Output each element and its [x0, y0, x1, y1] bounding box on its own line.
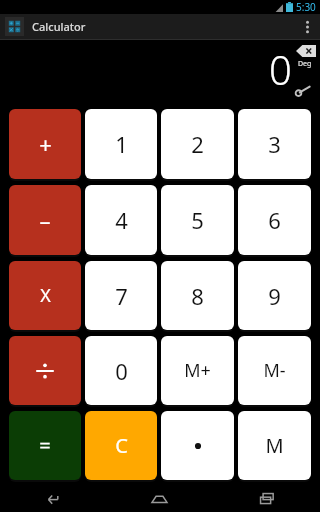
button[interactable]: 5: [161, 185, 234, 255]
staticText: –: [39, 205, 51, 235]
button[interactable]: Divide: [9, 336, 81, 405]
button[interactable]: 1: [85, 109, 157, 179]
button[interactable]: =: [9, 411, 81, 480]
staticText: M+: [184, 358, 211, 383]
staticText: 6: [268, 205, 281, 235]
button[interactable]: Back: [0, 485, 106, 512]
button[interactable]: +: [9, 109, 81, 179]
button[interactable]: 4: [85, 185, 157, 255]
button[interactable]: M-: [238, 336, 311, 405]
button[interactable]: Delete: [296, 45, 316, 57]
staticText: =: [39, 432, 51, 459]
button[interactable]: Decimal point: [161, 411, 234, 480]
button[interactable]: 8: [161, 261, 234, 330]
button[interactable]: 0: [85, 336, 157, 405]
staticText: 0: [115, 356, 128, 386]
staticText: 5: [191, 205, 204, 235]
button[interactable]: X: [9, 261, 81, 330]
staticText: Calculator: [32, 19, 86, 34]
button[interactable]: Recent apps: [213, 485, 320, 512]
staticText: X: [40, 283, 51, 308]
button[interactable]: 7: [85, 261, 157, 330]
button[interactable]: Settings: [295, 84, 311, 96]
button[interactable]: M: [238, 411, 311, 480]
staticText: 2: [191, 129, 204, 159]
staticText: 7: [115, 281, 128, 311]
button[interactable]: –: [9, 185, 81, 255]
staticText: Deg: [298, 59, 312, 69]
staticText: 1: [115, 129, 128, 159]
staticText: 9: [268, 281, 281, 311]
button[interactable]: 9: [238, 261, 311, 330]
staticText: 0: [269, 42, 292, 96]
staticText: C: [115, 432, 128, 459]
staticText: 3: [268, 129, 281, 159]
button[interactable]: 2: [161, 109, 234, 179]
staticText: M: [265, 432, 284, 459]
button[interactable]: C: [85, 411, 157, 480]
button[interactable]: More options: [294, 14, 320, 39]
button[interactable]: 3: [238, 109, 311, 179]
button[interactable]: 6: [238, 185, 311, 255]
staticText: 5:30: [296, 0, 316, 14]
staticText: 8: [191, 281, 204, 311]
button[interactable]: M+: [161, 336, 234, 405]
staticText: M-: [263, 358, 286, 383]
button[interactable]: Home: [106, 485, 213, 512]
staticText: +: [39, 129, 52, 159]
staticText: 4: [115, 205, 128, 235]
